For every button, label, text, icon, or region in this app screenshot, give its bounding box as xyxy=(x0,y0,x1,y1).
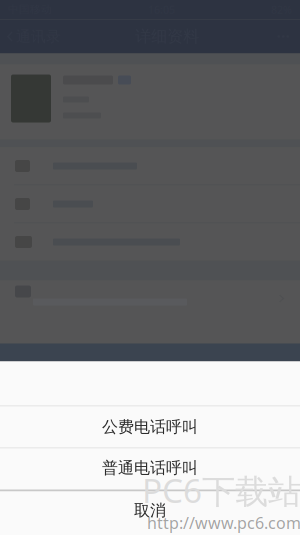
button[interactable] xyxy=(0,147,300,184)
staticText: PC6下载站 xyxy=(142,468,300,512)
button[interactable]: 取消 xyxy=(0,491,300,535)
button[interactable]: 公费电话呼叫 xyxy=(0,406,300,447)
button[interactable]: 普通电话呼叫 xyxy=(0,448,300,489)
button[interactable]: More xyxy=(266,19,300,53)
button[interactable]: 通讯录 xyxy=(0,19,68,53)
staticText: 普通电话呼叫 xyxy=(102,458,198,478)
staticText: 公费电话呼叫 xyxy=(102,417,198,437)
staticText: http://www.pc6.com xyxy=(147,512,300,533)
staticText: 取消 xyxy=(134,501,166,520)
button[interactable] xyxy=(0,223,300,260)
